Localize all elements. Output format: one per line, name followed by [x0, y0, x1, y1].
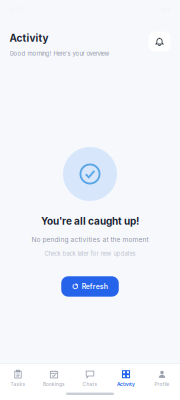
staticText: Activity: [9, 32, 48, 44]
staticText: Bookings: [43, 381, 65, 387]
button[interactable]: Activity: [108, 370, 144, 387]
button[interactable]: Bookings: [36, 370, 72, 387]
button[interactable]: Tasks: [0, 370, 36, 387]
staticText: Good morning! Here's your overview: [9, 50, 109, 57]
staticText: Refresh: [82, 282, 108, 291]
staticText: Activity: [117, 381, 135, 387]
button[interactable]: Profile: [144, 370, 180, 387]
staticText: Tasks: [10, 381, 25, 387]
staticText: Profile: [154, 381, 169, 387]
staticText: Check back later for new updates: [44, 250, 135, 257]
button[interactable]: Refresh: [61, 276, 119, 297]
button[interactable]: Chats: [72, 370, 108, 387]
staticText: You're all caught up!: [41, 215, 139, 227]
staticText: Chats: [82, 381, 97, 387]
button[interactable]: Notifications: [148, 32, 170, 52]
staticText: No pending activities at the moment: [31, 236, 148, 244]
